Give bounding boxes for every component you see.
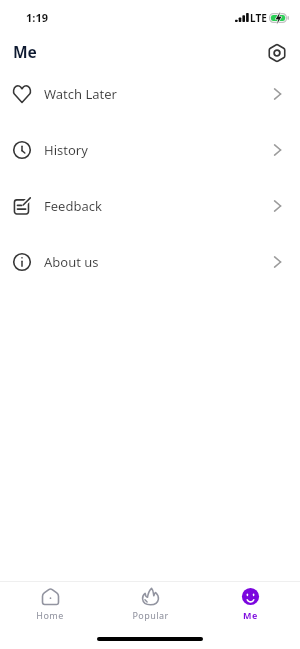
button[interactable]: History [0, 122, 300, 178]
button[interactable]: Watch Later [0, 66, 300, 122]
button[interactable]: Settings [265, 41, 289, 65]
button[interactable]: Feedback [0, 178, 300, 234]
staticText: About us [44, 253, 99, 271]
staticText: Home [36, 609, 64, 621]
button[interactable]: About us [0, 234, 300, 290]
staticText: Watch Later [44, 85, 117, 103]
staticText: LTE [250, 11, 267, 25]
staticText: 1:19 [26, 10, 48, 25]
button[interactable]: Popular [112, 581, 188, 627]
staticText: History [44, 141, 88, 159]
staticText: Me [13, 41, 37, 62]
button[interactable]: Home [12, 581, 88, 627]
staticText: Popular [132, 609, 169, 621]
staticText: Me [243, 609, 258, 621]
button[interactable]: Me [212, 581, 288, 627]
staticText: Feedback [44, 197, 102, 215]
